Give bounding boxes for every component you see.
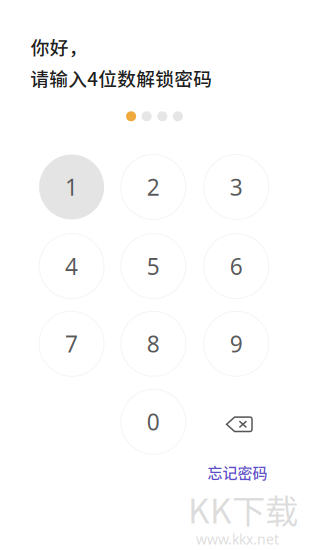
staticText: 你好，	[31, 33, 88, 60]
staticText: 9	[230, 328, 243, 359]
button[interactable]: 6	[204, 234, 269, 299]
staticText: 4	[65, 251, 78, 282]
staticText: 8	[147, 328, 160, 359]
button[interactable]: 1	[39, 154, 104, 219]
staticText: 7	[65, 328, 78, 359]
staticText: 请输入4位数解锁密码	[30, 64, 212, 91]
button[interactable]: 忘记密码	[208, 461, 268, 483]
staticText: 0	[147, 406, 160, 437]
staticText: 2	[147, 172, 160, 202]
button[interactable]: 3	[204, 154, 269, 219]
staticText: 5	[147, 251, 160, 282]
button[interactable]: 9	[204, 311, 269, 376]
staticText: KK下载	[188, 485, 298, 533]
staticText: 忘记密码	[208, 461, 268, 483]
button[interactable]: 2	[121, 154, 186, 219]
button[interactable]: Delete	[204, 389, 269, 454]
button[interactable]: 8	[121, 311, 186, 376]
staticText: 6	[230, 251, 243, 282]
staticText: 1	[65, 172, 78, 202]
button[interactable]: 4	[39, 234, 104, 299]
staticText: www.kkx.net	[196, 529, 279, 549]
button[interactable]: 7	[39, 311, 104, 376]
button[interactable]: 0	[121, 389, 186, 454]
staticText: 3	[230, 172, 243, 202]
button[interactable]: 5	[121, 234, 186, 299]
